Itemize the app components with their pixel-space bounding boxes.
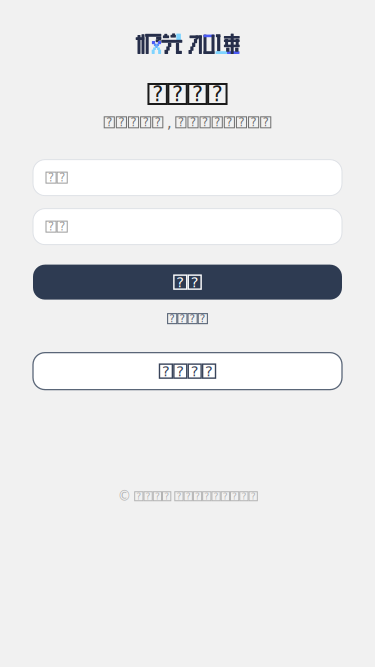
staticText: ? [241,491,246,502]
staticText: ? [59,220,65,233]
staticText: ? [232,491,237,502]
staticText: © [118,488,131,504]
staticText: ? [172,82,183,106]
staticText: ? [214,116,220,129]
staticText: ? [155,491,160,502]
staticText: ? [204,491,209,502]
staticText: ? [251,116,257,129]
staticText: ? [178,116,184,129]
staticText: ? [176,363,184,380]
staticText: ? [59,171,65,184]
staticText: ? [205,363,213,380]
staticText: ? [164,491,169,502]
staticText: ? [226,116,232,129]
staticText: ? [143,116,149,129]
staticText: ? [191,363,199,380]
staticText: ? [155,116,161,129]
button[interactable]: ? [33,265,342,300]
staticText: ? [169,313,175,325]
staticText: ? [223,491,228,502]
staticText: ? [48,220,54,233]
staticText: ? [212,82,223,106]
staticText: ? [202,116,208,129]
staticText: ? [152,82,163,106]
staticText: ? [200,313,206,325]
staticText: ? [192,82,203,106]
staticText: ? [191,274,199,291]
staticText: ? [176,274,184,291]
staticText: ? [136,491,141,502]
staticText: ? [190,116,196,129]
staticText: ? [130,116,136,129]
staticText: ? [176,491,181,502]
staticText: ? [263,116,269,129]
staticText: ? [48,171,54,184]
button[interactable]: ? [33,353,342,390]
staticText: ? [179,313,185,325]
staticText: ? [118,116,124,129]
staticText: ? [162,363,170,380]
staticText: ? [190,313,196,325]
staticText: ? [214,491,219,502]
staticText: ? [251,491,256,502]
staticText: ? [238,116,244,129]
staticText: , [167,113,172,132]
staticText: ? [106,116,112,129]
staticText: ? [186,491,191,502]
staticText: ? [146,491,151,502]
button[interactable]: ? [163,309,212,329]
staticText: ? [195,491,200,502]
